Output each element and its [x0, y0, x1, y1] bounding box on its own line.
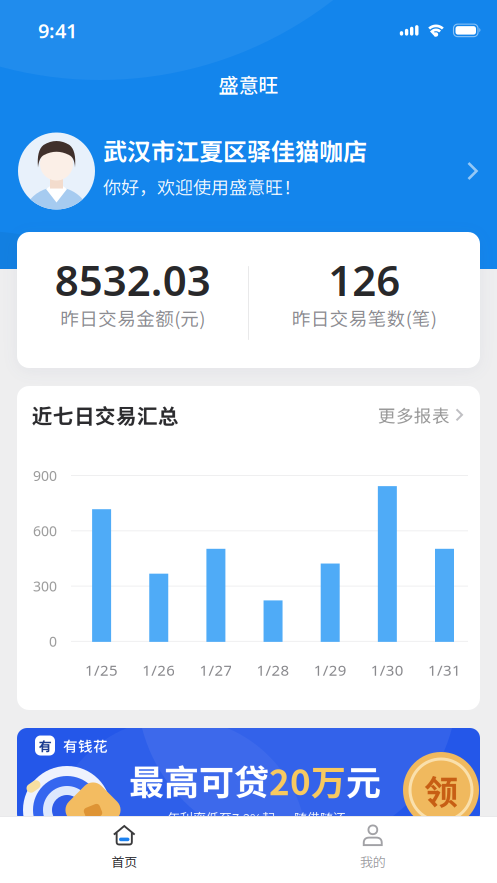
staticText: 126	[328, 251, 400, 308]
staticText: 年利率低至7.2%起 · 随借随还	[167, 808, 346, 827]
staticText: 9:41	[38, 17, 77, 44]
staticText: 20万	[269, 755, 346, 805]
staticText: 更多报表	[378, 402, 450, 427]
staticText: 最高可贷	[129, 755, 269, 805]
button[interactable]: 更多报表	[378, 402, 464, 427]
staticText: 600	[33, 521, 57, 540]
button[interactable]: 有钱花 最高可贷20万元 领取	[0, 728, 497, 824]
staticText: 你好，欢迎使用盛意旺！	[103, 173, 301, 199]
staticText: 0	[49, 632, 57, 651]
staticText: 900	[33, 466, 57, 485]
staticText: 有	[38, 736, 51, 755]
staticText: 元	[346, 755, 381, 805]
staticText: 1/29	[314, 660, 347, 680]
staticText: 昨日交易笔数(笔)	[292, 304, 437, 331]
staticText: 8532.03	[55, 251, 211, 308]
staticText: 有钱花	[63, 735, 108, 756]
staticText: 昨日交易金额(元)	[60, 304, 205, 331]
staticText: 武汉市江夏区驿佳猫咖店	[103, 133, 367, 167]
staticText: 领	[424, 765, 458, 815]
button[interactable]: 我的	[248, 817, 497, 871]
staticText: 300	[33, 577, 57, 596]
staticText: 首页	[111, 852, 137, 871]
staticText: 我的	[360, 852, 386, 871]
staticText: 1/25	[85, 660, 118, 680]
staticText: 1/28	[256, 660, 289, 680]
staticText: 盛意旺	[218, 69, 278, 98]
staticText: 1/27	[199, 660, 232, 680]
staticText: 1/31	[428, 660, 461, 680]
button[interactable]: 武汉市江夏区驿佳猫咖店	[0, 132, 497, 209]
staticText: 1/30	[371, 660, 404, 680]
button[interactable]: 首页	[0, 817, 248, 871]
staticText: 近七日交易汇总	[32, 400, 179, 430]
staticText: 1/26	[142, 660, 175, 680]
